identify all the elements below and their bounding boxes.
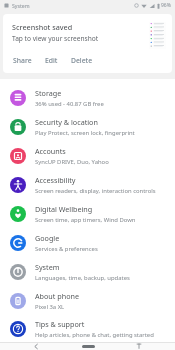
staticText: 36% used - 40.87 GB free <box>35 100 104 108</box>
button[interactable]: Tips & support <box>0 315 175 342</box>
staticText: Edit <box>45 56 58 65</box>
staticText: Tips & support <box>35 319 85 329</box>
staticText: Delete <box>71 56 93 65</box>
button[interactable]: Digital Wellbeing <box>0 199 175 228</box>
staticText: Screen time, app timers, Wind Down <box>35 216 136 224</box>
button[interactable]: Accounts <box>0 141 175 170</box>
staticText: Share <box>13 56 32 65</box>
staticText: Play Protect, screen lock, fingerprint <box>35 129 135 137</box>
button[interactable]: Screenshot saved <box>3 14 172 73</box>
staticText: Tap to view your screenshot <box>12 34 99 43</box>
staticText: Security & location <box>35 117 98 127</box>
staticText: 96% <box>161 2 171 9</box>
staticText: Help articles, phone & chat, getting sta… <box>35 331 154 339</box>
button[interactable]: Assistant <box>128 342 150 350</box>
staticText: Digital Wellbeing <box>35 204 93 214</box>
staticText: Languages, time, backup, updates <box>35 274 130 282</box>
button[interactable]: Share <box>10 55 35 66</box>
staticText: Screen readers, display, interaction con… <box>35 187 156 195</box>
staticText: Pixel 3a XL <box>35 303 65 311</box>
button[interactable]: Back <box>25 342 47 350</box>
button[interactable]: Google <box>0 228 175 257</box>
staticText: Services & preferences <box>35 245 98 253</box>
staticText: Accessibility <box>35 175 76 185</box>
staticText: Screenshot saved <box>12 22 73 32</box>
staticText: Storage <box>35 88 62 98</box>
button[interactable]: System <box>0 257 175 286</box>
button[interactable]: Accessibility <box>0 170 175 199</box>
staticText: System <box>35 262 60 272</box>
staticText: System <box>12 2 30 9</box>
button[interactable]: Delete <box>68 55 96 66</box>
button[interactable]: About phone <box>0 286 175 315</box>
button[interactable]: Edit <box>42 55 61 66</box>
staticText: About phone <box>35 291 79 301</box>
button[interactable]: Storage <box>0 83 175 112</box>
staticText: Accounts <box>35 146 66 156</box>
button[interactable]: Security & location <box>0 112 175 141</box>
button[interactable]: Home <box>73 342 103 350</box>
staticText: SyncUP DRIVE, Duo, Yahoo <box>35 158 109 166</box>
staticText: Google <box>35 233 60 243</box>
